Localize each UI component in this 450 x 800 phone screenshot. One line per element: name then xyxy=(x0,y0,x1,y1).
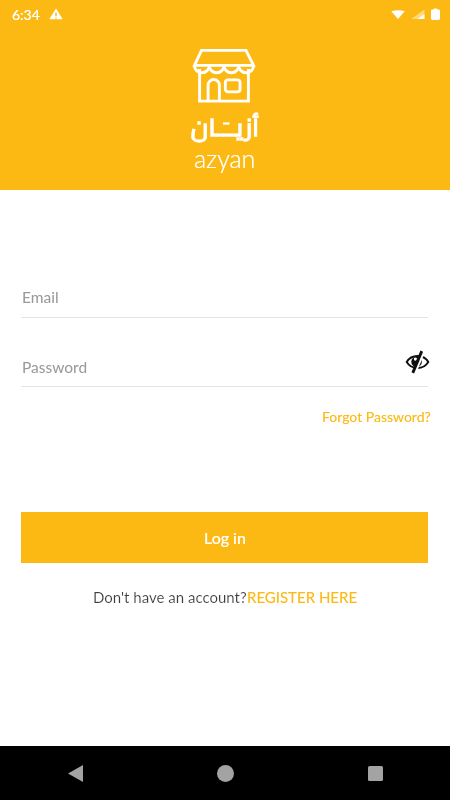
button[interactable]: REGISTER HERE xyxy=(247,588,358,606)
staticText: REGISTER HERE xyxy=(247,588,358,606)
staticText: أزيــَـان xyxy=(191,105,260,150)
button[interactable]: Email xyxy=(21,288,428,317)
staticText: Don't have an account? xyxy=(93,588,247,606)
staticText: 6:34 xyxy=(12,6,40,23)
staticText: azyan xyxy=(194,143,256,173)
staticText: Email xyxy=(22,288,59,307)
staticText: Password xyxy=(22,358,88,377)
staticText: Forgot Password? xyxy=(322,408,431,425)
staticText: Log in xyxy=(204,528,246,547)
button[interactable]: Home xyxy=(150,746,300,800)
button[interactable]: Recent apps xyxy=(300,746,450,800)
button[interactable]: Show password xyxy=(402,347,432,377)
button[interactable]: Log in xyxy=(21,512,428,563)
button[interactable]: Password xyxy=(21,358,428,386)
button[interactable]: Back xyxy=(0,746,150,800)
button[interactable]: Forgot Password? xyxy=(322,408,431,425)
